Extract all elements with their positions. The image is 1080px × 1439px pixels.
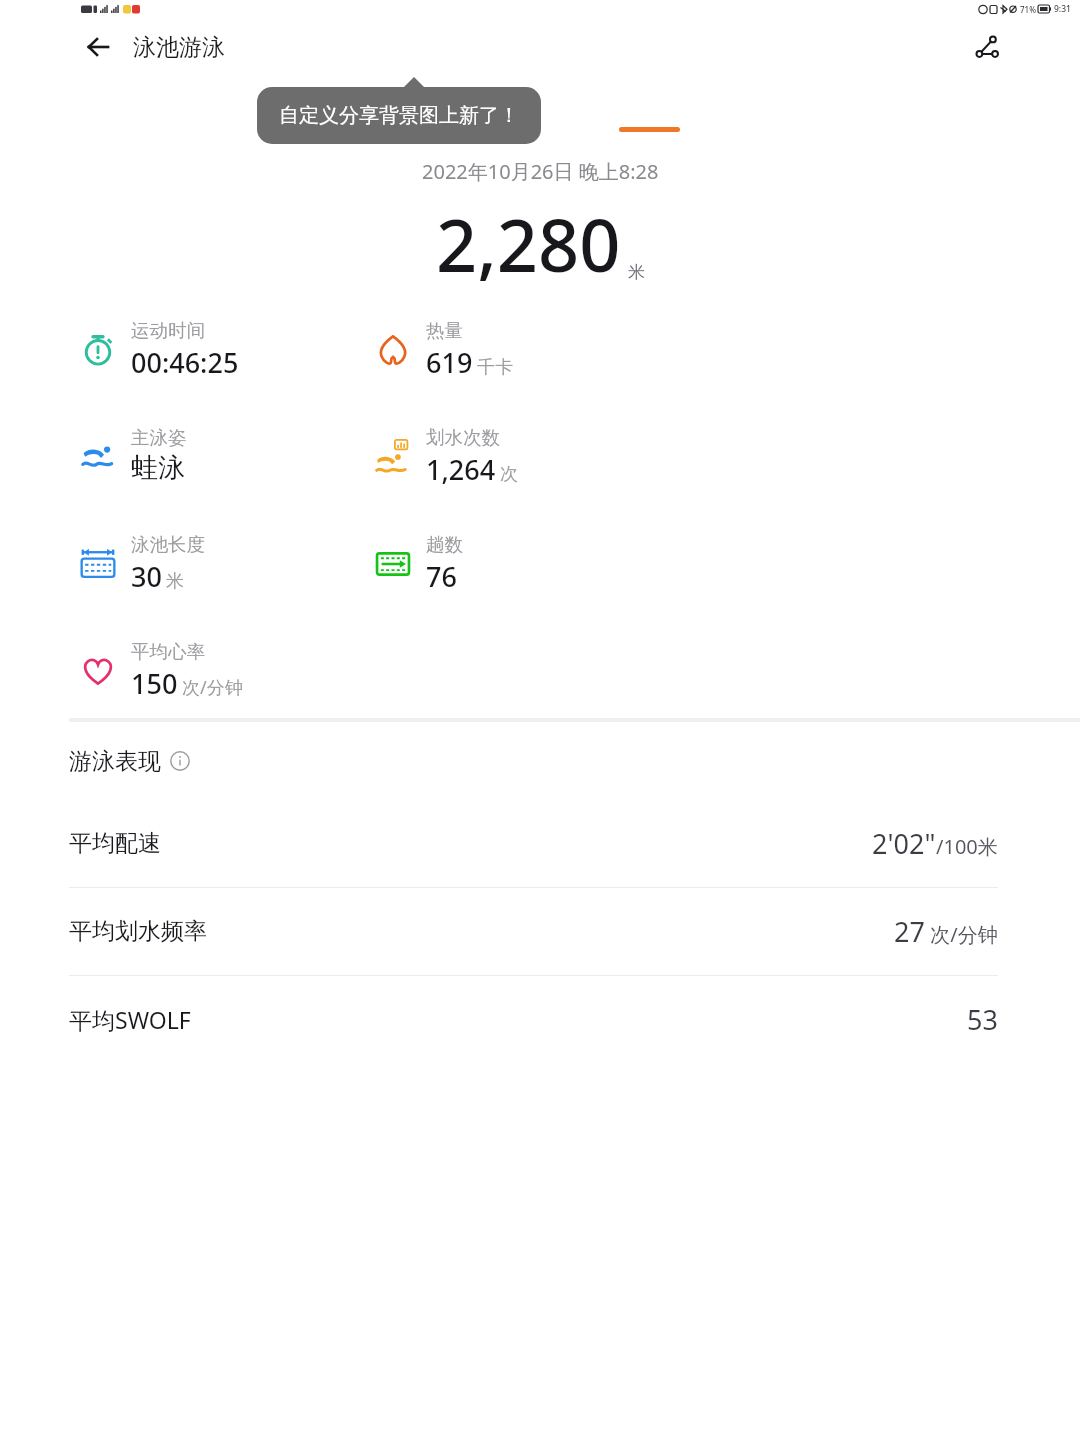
button[interactable]: 自定义分享背景图上新了！ (257, 87, 541, 144)
staticText: 次 (500, 463, 518, 486)
staticText: 30 (131, 558, 162, 595)
staticText: 平均配速 (69, 829, 161, 858)
staticText: 27 (894, 913, 925, 950)
staticText: 趟数 (426, 533, 463, 556)
staticText: 00:46:25 (131, 344, 239, 381)
staticText: 米 (166, 570, 184, 593)
staticText: 53 (967, 1001, 998, 1038)
staticText: 自定义分享背景图上新了！ (279, 103, 519, 128)
staticText: 泳池长度 (131, 533, 205, 556)
button[interactable]: 平均心率 (79, 640, 243, 702)
button[interactable]: 平均配速 (69, 800, 998, 887)
staticText: 米 (628, 262, 645, 283)
staticText: 76 (426, 558, 457, 595)
staticText: 71% (1020, 4, 1036, 15)
staticText: 1,264 (426, 451, 496, 488)
staticText: 蛙泳 (131, 451, 185, 485)
staticText: 平均心率 (131, 640, 205, 663)
staticText: /100米 (936, 833, 998, 860)
staticText: 分段 (382, 94, 424, 120)
button[interactable]: 泳池长度 (79, 533, 205, 595)
staticText: 150 (131, 665, 178, 702)
button[interactable]: 热量 (374, 319, 513, 381)
staticText: 平均划水频率 (69, 917, 207, 946)
staticText: 主泳姿 (131, 426, 187, 449)
button[interactable]: 平均SWOLF (69, 976, 998, 1063)
button[interactable]: 分享 (964, 24, 1010, 70)
button[interactable]: 平均划水频率 (69, 888, 998, 975)
staticText: 千卡 (477, 356, 513, 379)
staticText: 游泳表现 (69, 747, 161, 776)
button[interactable]: 划水次数 (374, 426, 518, 488)
staticText: 次/分钟 (182, 675, 243, 700)
staticText: 9:31 (1054, 3, 1071, 15)
staticText: 2'02" (872, 825, 936, 862)
button[interactable]: 主泳姿 (79, 426, 187, 485)
staticText: 2,280 (436, 195, 621, 293)
button[interactable]: 运动时间 (79, 319, 239, 381)
button[interactable]: 分段 (370, 84, 436, 130)
staticText: 619 (426, 344, 473, 381)
staticText: 2022年10月26日 晚上8:28 (422, 158, 659, 185)
staticText: 运动时间 (131, 319, 205, 342)
button[interactable]: 游泳表现 (69, 722, 998, 800)
button[interactable]: 返回 (76, 25, 120, 69)
staticText: 泳池游泳 (133, 33, 225, 62)
button[interactable]: 趟数 (374, 533, 463, 595)
staticText: 划水次数 (426, 426, 500, 449)
staticText: 次/分钟 (925, 921, 998, 948)
staticText: 平均SWOLF (69, 1004, 191, 1035)
staticText: 热量 (426, 319, 463, 342)
